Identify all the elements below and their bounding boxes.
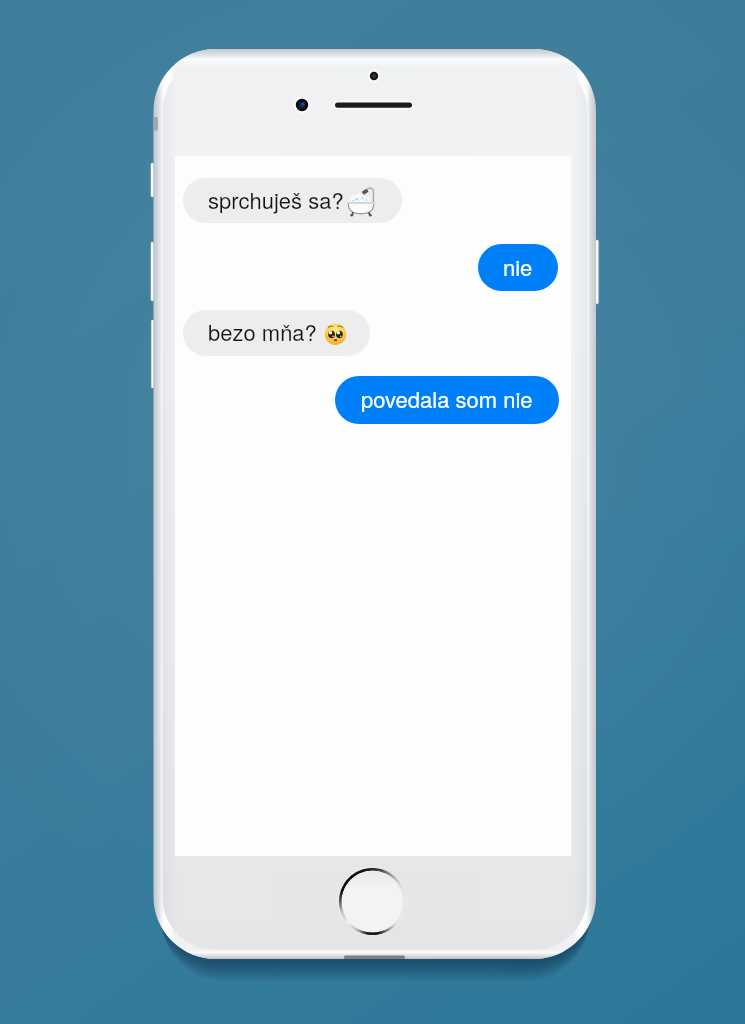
staticText: sprchuješ sa? [208,184,344,216]
button[interactable]: sprchuješ sa? [183,178,402,223]
staticText: povedala som nie [361,383,533,415]
staticText: bezo mňa? [208,316,317,348]
button[interactable]: nie [478,244,558,291]
button[interactable]: Home [340,869,405,934]
staticText: nie [503,251,533,283]
button[interactable]: povedala som nie [335,376,559,424]
button[interactable]: bezo mňa? [183,310,370,356]
